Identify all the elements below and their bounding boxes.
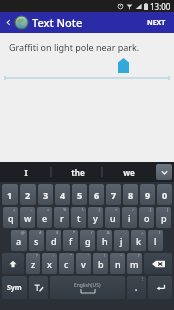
button[interactable]: c — [59, 253, 74, 274]
button[interactable]: t — [71, 207, 86, 228]
button[interactable]: i — [122, 207, 137, 228]
staticText: c — [64, 258, 69, 270]
button[interactable]: x — [42, 253, 57, 274]
staticText: the — [71, 167, 85, 178]
staticText: * — [73, 230, 76, 235]
staticText: English(US) — [74, 282, 101, 289]
button[interactable]: z — [26, 253, 40, 274]
staticText: i — [128, 212, 131, 224]
staticText: v — [81, 258, 86, 270]
staticText: [ — [150, 207, 152, 212]
button[interactable]: the — [52, 162, 103, 182]
staticText: " — [70, 253, 72, 258]
button[interactable]: 6 — [89, 184, 104, 205]
staticText: p — [161, 212, 167, 224]
button[interactable]: j — [114, 230, 129, 251]
staticText: y — [93, 212, 98, 224]
button[interactable]: Graffiti on light pole near park. — [9, 41, 140, 53]
button[interactable]: h — [97, 230, 112, 251]
button[interactable]: 3 — [38, 184, 53, 205]
staticText: ? — [36, 253, 38, 258]
button[interactable]: p — [156, 207, 171, 228]
button[interactable]: w — [20, 207, 35, 228]
button[interactable]: e — [37, 207, 52, 228]
button[interactable]: l — [148, 230, 163, 251]
button[interactable]: u — [105, 207, 120, 228]
staticText: q — [8, 212, 14, 224]
button[interactable]: I — [0, 162, 52, 182]
button[interactable]: Back — [3, 12, 13, 33]
button[interactable]: 1 — [2, 184, 18, 205]
staticText: ( — [159, 230, 161, 235]
staticText: 2 — [25, 189, 31, 201]
button[interactable]: m — [127, 253, 142, 274]
button[interactable]: NEXT — [144, 14, 169, 32]
staticText: \ — [82, 207, 84, 212]
button[interactable]: d — [46, 230, 61, 251]
staticText: 0 — [162, 189, 168, 201]
staticText: 1 — [7, 189, 13, 201]
staticText: 3 — [43, 189, 49, 201]
staticText: l — [154, 235, 157, 247]
button[interactable]: Change input method — [29, 276, 48, 299]
button[interactable]: f — [63, 230, 78, 251]
button[interactable]: we — [103, 162, 154, 182]
staticText: # — [39, 230, 42, 235]
staticText: 4 — [60, 189, 66, 201]
button[interactable]: q — [3, 207, 18, 228]
staticText: % — [63, 207, 67, 212]
button[interactable]: b — [93, 253, 108, 274]
button[interactable]: Backspace — [144, 253, 172, 274]
staticText: k — [136, 235, 142, 247]
staticText: - — [125, 230, 127, 235]
staticText: 6 — [94, 189, 100, 201]
button[interactable]: g — [80, 230, 95, 251]
staticText: ? — [138, 253, 140, 258]
button[interactable]: Shift — [2, 253, 24, 274]
button[interactable]: 9 — [140, 184, 155, 205]
button[interactable]: 4 — [55, 184, 70, 205]
button[interactable]: More suggestions — [156, 164, 172, 180]
button[interactable]: v — [76, 253, 91, 274]
staticText: | — [98, 207, 101, 212]
button[interactable]: Space — [50, 276, 125, 299]
staticText: s — [34, 235, 39, 247]
button[interactable]: 5 — [72, 184, 87, 205]
staticText: h — [102, 235, 108, 247]
button[interactable]: 7 — [106, 184, 121, 205]
staticText: > — [132, 207, 135, 212]
button[interactable]: y — [88, 207, 103, 228]
staticText: b — [98, 258, 104, 270]
button[interactable]: r — [54, 207, 69, 228]
staticText: < — [115, 207, 118, 212]
staticText: x — [47, 258, 52, 270]
staticText: ~ — [120, 253, 123, 258]
staticText: n — [115, 258, 121, 270]
button[interactable]: 8 — [123, 184, 138, 205]
staticText: ] — [167, 207, 169, 212]
staticText: 5 — [77, 189, 83, 201]
button[interactable]: Sym — [2, 276, 27, 299]
button[interactable]: o — [139, 207, 154, 228]
button[interactable]: . — [127, 276, 146, 299]
staticText: j — [120, 235, 123, 247]
staticText: @ — [21, 230, 25, 235]
staticText: z — [31, 258, 36, 270]
button[interactable]: n — [110, 253, 125, 274]
staticText: d — [51, 235, 57, 247]
staticText: & — [107, 230, 110, 235]
staticText: ' — [88, 253, 89, 258]
button[interactable]: Enter — [148, 276, 172, 299]
staticText: f — [69, 235, 73, 247]
staticText: 9 — [145, 189, 151, 201]
staticText: Text Note — [32, 15, 83, 30]
button[interactable]: s — [29, 230, 44, 251]
button[interactable]: 0 — [157, 184, 172, 205]
staticText: + — [13, 207, 16, 212]
staticText: ! — [104, 253, 106, 258]
button[interactable]: 2 — [20, 184, 36, 205]
button[interactable]: k — [131, 230, 146, 251]
staticText: NEXT — [147, 18, 166, 28]
button[interactable]: a — [11, 230, 27, 251]
staticText: w — [24, 212, 32, 224]
